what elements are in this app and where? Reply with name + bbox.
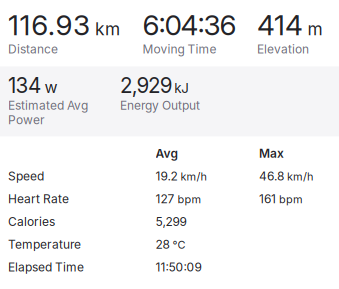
staticText: 19.2 km/h (155, 169, 206, 183)
button[interactable]: Calories (8, 214, 339, 237)
staticText: Distance (8, 42, 58, 56)
button[interactable]: Speed (8, 169, 339, 192)
staticText: 414 (257, 8, 303, 42)
button[interactable]: Elapsed Time (8, 260, 339, 283)
staticText: 134 (8, 73, 41, 98)
staticText: Speed (8, 169, 44, 183)
staticText: 11:50:09 (155, 260, 201, 274)
staticText: m (307, 18, 322, 39)
staticText: 6:04:36 (142, 8, 236, 42)
staticText: w (44, 77, 57, 97)
staticText: 2,929 (120, 73, 173, 98)
staticText: Temperature (8, 237, 81, 252)
staticText: Elevation (257, 42, 309, 56)
staticText: 28 °C (155, 237, 185, 251)
staticText: Calories (8, 214, 55, 229)
staticText: kJ (174, 80, 189, 96)
staticText: 116.93 (8, 8, 90, 42)
button[interactable]: Temperature (8, 237, 339, 260)
staticText: Estimated Avg Power (8, 98, 88, 127)
staticText: Elapsed Time (8, 260, 84, 274)
staticText: Heart Rate (8, 192, 69, 206)
staticText: 5,299 (155, 214, 186, 229)
staticText: Max (259, 146, 284, 161)
staticText: 46.8 km/h (259, 169, 313, 183)
staticText: Energy Output (120, 98, 200, 112)
staticText: 161 bpm (259, 192, 303, 206)
staticText: km (95, 18, 120, 39)
staticText: 127 bpm (155, 192, 201, 206)
staticText: Avg (155, 146, 178, 161)
button[interactable]: Heart Rate (8, 192, 339, 214)
staticText: Moving Time (142, 42, 216, 56)
